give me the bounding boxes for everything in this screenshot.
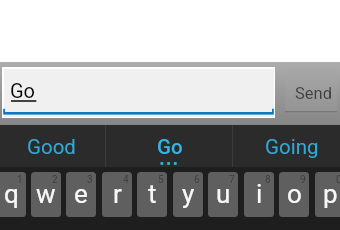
staticText: Go xyxy=(157,135,183,159)
staticText: t xyxy=(148,179,157,209)
button[interactable]: Good xyxy=(0,125,106,168)
staticText: 1 xyxy=(17,174,23,186)
staticText: Send xyxy=(295,84,332,103)
staticText: i xyxy=(256,179,263,209)
button[interactable]: Go xyxy=(105,125,233,168)
button[interactable]: 7 xyxy=(208,172,238,217)
button[interactable]: 4 xyxy=(102,172,132,217)
button[interactable]: 8 xyxy=(244,172,274,217)
button[interactable]: Go xyxy=(2,67,275,118)
staticText: p xyxy=(323,179,338,209)
staticText: Going xyxy=(265,135,319,159)
button[interactable]: 0 xyxy=(315,172,340,217)
staticText: 5 xyxy=(158,174,164,186)
staticText: u xyxy=(216,179,231,209)
button[interactable]: Send xyxy=(285,68,337,112)
staticText: Go xyxy=(10,79,36,102)
staticText: 6 xyxy=(194,174,200,186)
staticText: 4 xyxy=(123,174,129,186)
staticText: 0 xyxy=(336,174,340,186)
staticText: q xyxy=(4,179,19,209)
button[interactable]: 3 xyxy=(66,172,96,217)
staticText: 8 xyxy=(265,174,271,186)
button[interactable]: 6 xyxy=(173,172,203,217)
button[interactable]: 2 xyxy=(31,172,61,217)
staticText: y xyxy=(182,179,195,209)
button[interactable]: 1 xyxy=(0,172,26,217)
staticText: e xyxy=(74,179,88,209)
button[interactable]: 9 xyxy=(279,172,309,217)
staticText: w xyxy=(36,179,56,209)
staticText: 7 xyxy=(229,174,235,186)
staticText: 3 xyxy=(87,174,93,186)
staticText: Good xyxy=(27,135,76,159)
staticText: r xyxy=(113,179,122,209)
staticText: 2 xyxy=(52,174,58,186)
button[interactable]: 5 xyxy=(137,172,167,217)
staticText: 9 xyxy=(300,174,306,186)
button[interactable]: Going xyxy=(234,125,340,168)
staticText: o xyxy=(287,179,302,209)
